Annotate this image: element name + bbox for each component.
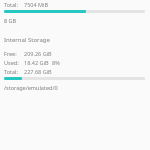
staticText: 8 GB xyxy=(4,17,17,24)
staticText: Used: xyxy=(4,59,24,66)
staticText: 18.42 GiB xyxy=(24,59,49,66)
button[interactable]: Internal Storage xyxy=(4,36,145,44)
staticText: Total: xyxy=(4,68,24,75)
staticText: 209.26 GiB xyxy=(24,50,52,57)
staticText: 7504 MiB xyxy=(24,1,48,8)
staticText: Internal Storage xyxy=(4,36,50,44)
staticText: Total: xyxy=(4,1,24,8)
staticText: /storage/emulated/0 xyxy=(4,84,58,91)
staticText: 227.68 GiB xyxy=(24,68,52,75)
staticText: Free: xyxy=(4,50,24,57)
staticText: 8% xyxy=(52,59,60,66)
button[interactable]: /storage/emulated/0 xyxy=(4,84,145,91)
